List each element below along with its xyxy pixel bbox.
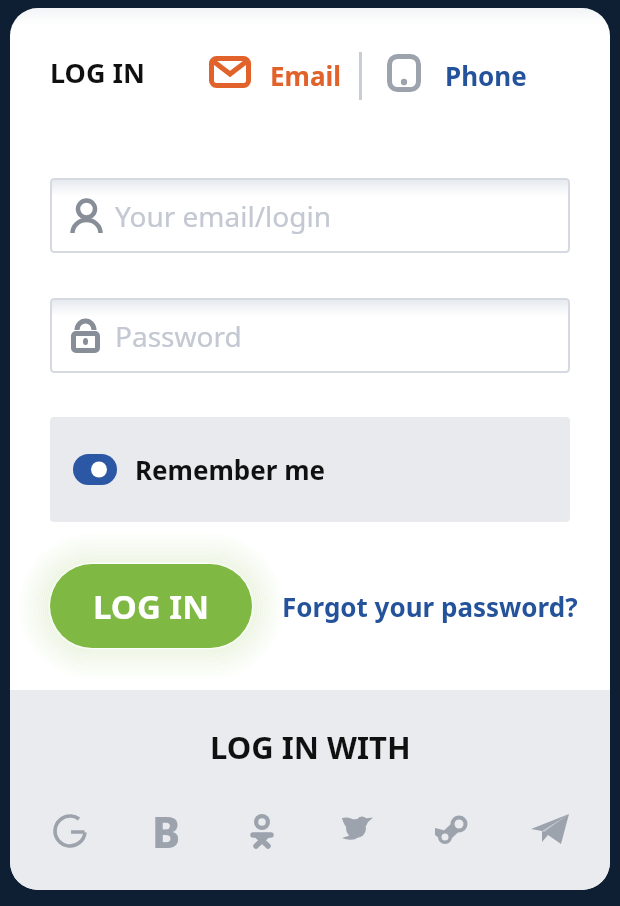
button[interactable] — [242, 803, 282, 859]
button[interactable] — [434, 803, 474, 859]
staticText: Your email/login — [115, 197, 331, 235]
button[interactable]: Email — [200, 46, 360, 100]
button[interactable] — [338, 803, 378, 859]
button[interactable] — [530, 803, 570, 859]
button[interactable]: B — [146, 803, 186, 859]
button[interactable]: Remember me — [50, 417, 570, 522]
staticText: LOG IN — [93, 584, 210, 629]
staticText: Password — [115, 317, 242, 355]
staticText: Remember me — [135, 452, 326, 487]
button[interactable]: LOG IN — [50, 564, 252, 648]
staticText: Forgot your password? — [282, 589, 578, 624]
staticText: LOG IN WITH — [210, 726, 411, 768]
staticText: LOG IN — [50, 54, 145, 91]
staticText: B — [152, 803, 181, 859]
button[interactable]: Forgot your password? — [282, 578, 592, 634]
staticText: Phone — [445, 58, 527, 93]
staticText: Email — [270, 58, 342, 93]
button[interactable] — [50, 803, 90, 859]
button[interactable]: Your email/login — [50, 178, 570, 253]
button[interactable]: Phone — [377, 46, 537, 100]
button[interactable]: Password — [50, 298, 570, 373]
